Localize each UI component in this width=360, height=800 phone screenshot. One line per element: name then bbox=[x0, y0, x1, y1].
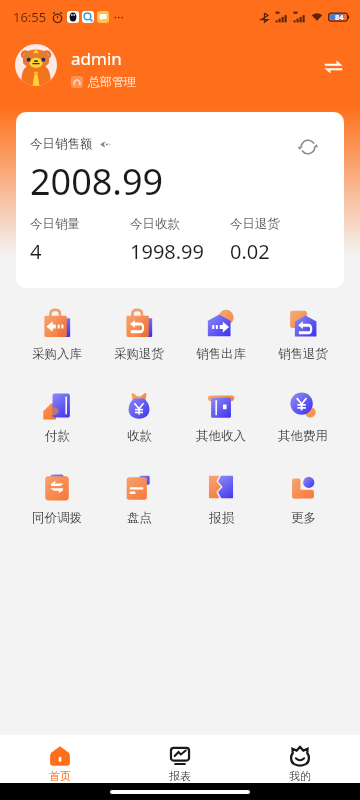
staticText: 采购入库 bbox=[32, 346, 82, 362]
button[interactable]: 销售退货 bbox=[262, 299, 344, 381]
button[interactable]: Switch account bbox=[316, 50, 350, 84]
button[interactable]: 其他费用 bbox=[262, 381, 344, 463]
staticText: 今日销量 bbox=[30, 216, 80, 232]
button[interactable]: 采购入库 bbox=[16, 299, 98, 381]
staticText: 今日收款 bbox=[130, 216, 180, 232]
staticText: 付款 bbox=[45, 428, 70, 444]
staticText: 其他收入 bbox=[196, 428, 246, 444]
staticText: 更多 bbox=[291, 510, 316, 526]
staticText: 16:55 bbox=[13, 8, 47, 26]
button[interactable]: Refresh bbox=[295, 134, 321, 160]
staticText: 首页 bbox=[49, 769, 71, 783]
button[interactable]: 更多 bbox=[262, 463, 344, 545]
staticText: 采购退货 bbox=[114, 346, 164, 362]
button[interactable]: 销售出库 bbox=[180, 299, 262, 381]
staticText: admin bbox=[71, 47, 122, 70]
staticText: 1998.99 bbox=[130, 238, 204, 265]
staticText: 报表 bbox=[169, 769, 191, 783]
button[interactable]: Toggle visibility bbox=[98, 137, 112, 151]
staticText: 收款 bbox=[127, 428, 152, 444]
staticText: 盘点 bbox=[127, 510, 152, 526]
staticText: 0.02 bbox=[230, 238, 270, 265]
button[interactable]: 报损 bbox=[180, 463, 262, 545]
staticText: 销售退货 bbox=[278, 346, 328, 362]
button[interactable]: 收款 bbox=[98, 381, 180, 463]
staticText: 今日销售额 bbox=[30, 136, 93, 152]
button[interactable]: Profile bbox=[15, 44, 57, 86]
button[interactable]: 付款 bbox=[16, 381, 98, 463]
staticText: 其他费用 bbox=[278, 428, 328, 444]
staticText: 2008.99 bbox=[30, 157, 164, 206]
button[interactable]: 首页 bbox=[0, 735, 120, 783]
staticText: 销售出库 bbox=[196, 346, 246, 362]
staticText: 4 bbox=[30, 238, 42, 265]
button[interactable]: 其他收入 bbox=[180, 381, 262, 463]
button[interactable]: 同价调拨 bbox=[16, 463, 98, 545]
staticText: 报损 bbox=[209, 510, 234, 526]
staticText: 总部管理 bbox=[88, 74, 136, 89]
staticText: 我的 bbox=[289, 769, 311, 783]
button[interactable]: 我的 bbox=[240, 735, 360, 783]
button[interactable]: 报表 bbox=[120, 735, 240, 783]
staticText: 84 bbox=[335, 12, 344, 22]
button[interactable]: 盘点 bbox=[98, 463, 180, 545]
staticText: 今日退货 bbox=[230, 216, 280, 232]
staticText: 同价调拨 bbox=[32, 510, 82, 526]
button[interactable]: 采购退货 bbox=[98, 299, 180, 381]
